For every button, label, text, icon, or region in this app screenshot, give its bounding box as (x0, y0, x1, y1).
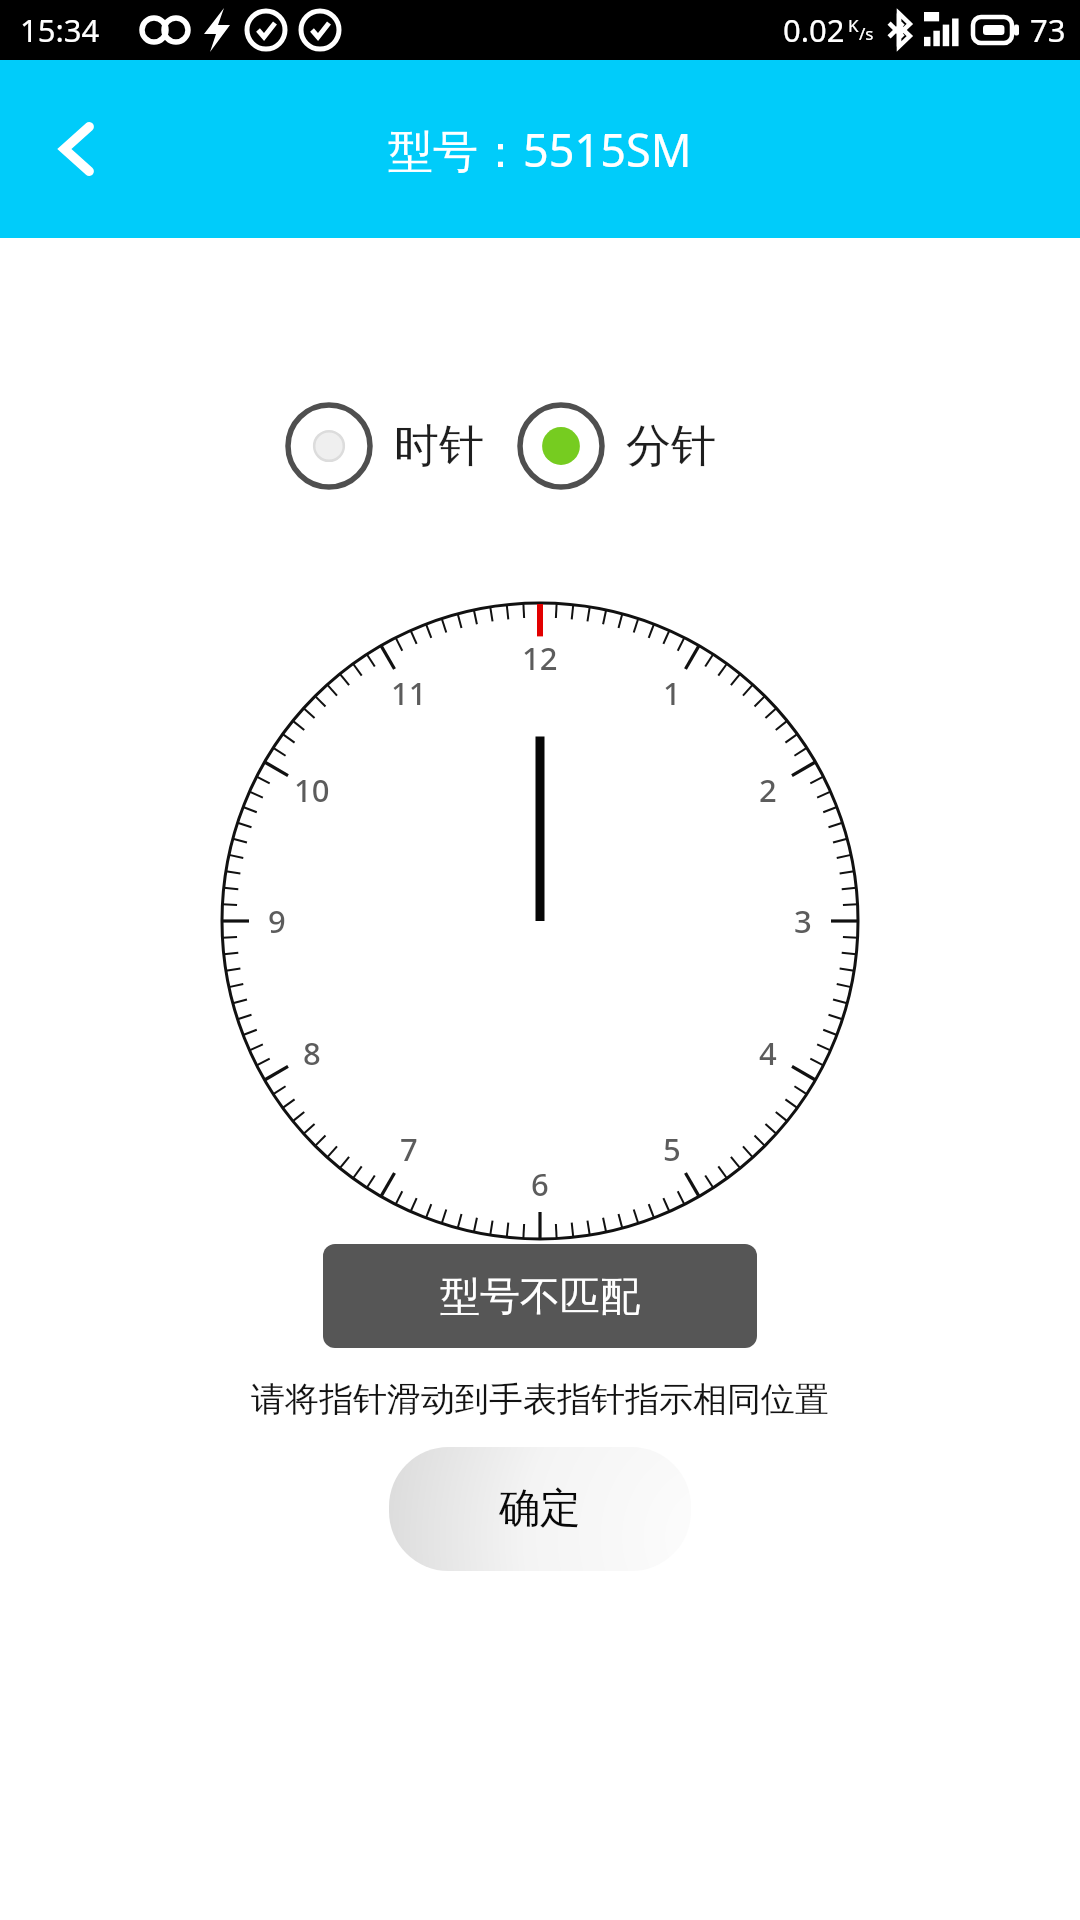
staticText: 型号：5515SM (388, 119, 692, 180)
button[interactable]: 确定 (389, 1447, 691, 1571)
button[interactable]: 型号不匹配 (323, 1244, 757, 1348)
staticText: 7 (400, 1128, 418, 1170)
staticText: 请将指针滑动到手表指针指示相同位置 (0, 1378, 1080, 1421)
staticText: 1 (663, 672, 681, 714)
staticText: 15:34 (20, 9, 100, 51)
staticText: 73 (1030, 9, 1066, 51)
staticText: 8 (303, 1032, 321, 1074)
staticText: 10 (294, 769, 330, 811)
button[interactable]: Back (26, 97, 130, 201)
staticText: 6 (531, 1163, 549, 1205)
staticText: 分针 (626, 418, 716, 475)
staticText: 11 (391, 672, 427, 714)
staticText: /s (859, 22, 874, 45)
staticText: 5 (663, 1128, 681, 1170)
staticText: 0.02 (783, 9, 845, 51)
staticText: K (848, 14, 859, 37)
staticText: 12 (522, 637, 558, 679)
staticText: 确定 (499, 1483, 581, 1535)
staticText: 4 (759, 1032, 777, 1074)
button[interactable]: 分针 (516, 401, 716, 491)
button[interactable]: 时针 (284, 401, 484, 491)
staticText: 2 (759, 769, 777, 811)
staticText: 9 (268, 900, 286, 942)
staticText: 型号不匹配 (440, 1271, 640, 1321)
staticText: 时针 (394, 418, 484, 475)
staticText: 3 (794, 900, 812, 942)
